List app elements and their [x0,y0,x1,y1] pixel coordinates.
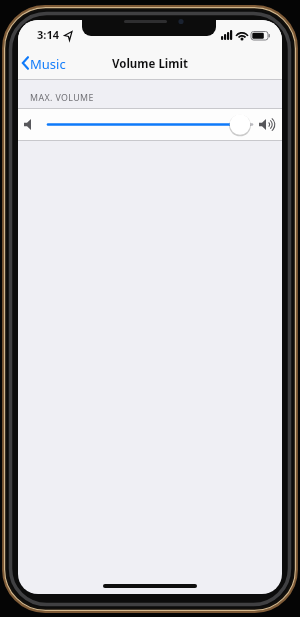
staticText: Music [30,55,66,73]
button[interactable]: Music [18,52,78,78]
button[interactable] [18,108,282,141]
staticText: Volume Limit [112,56,188,72]
staticText: 3:14 [37,27,59,42]
staticText: MAX. VOLUME [30,92,94,104]
